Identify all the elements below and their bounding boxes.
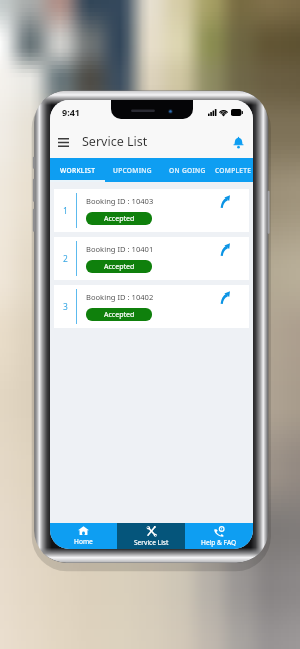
button[interactable]: Service List (117, 523, 185, 549)
staticText: ON GOING (169, 166, 206, 175)
staticText: Booking ID : 10402 (86, 292, 154, 302)
staticText: Home (74, 537, 93, 546)
staticText: Accepted (104, 310, 135, 320)
button[interactable]: Accepted (86, 212, 152, 225)
staticText: Accepted (104, 214, 135, 224)
button[interactable]: Accepted (86, 260, 152, 273)
staticText: 1 (63, 205, 68, 217)
button[interactable]: Home (50, 523, 117, 549)
staticText: Booking ID : 10403 (86, 196, 154, 206)
button[interactable]: Navigate to booking (211, 189, 249, 232)
button[interactable]: Navigate to booking (211, 237, 249, 280)
staticText: 2 (63, 253, 68, 265)
button[interactable]: UPCOMING (105, 158, 160, 182)
staticText: Booking ID : 10401 (86, 244, 154, 254)
staticText: 9:41 (62, 106, 80, 118)
staticText: Service List (82, 133, 148, 150)
staticText: UPCOMING (113, 166, 152, 175)
staticText: Help & FAQ (201, 538, 237, 547)
button[interactable]: 3 (54, 285, 249, 328)
staticText: 3 (63, 301, 68, 313)
button[interactable]: WORKLIST (50, 158, 105, 182)
staticText: COMPLETED (215, 166, 253, 175)
button[interactable]: Help & FAQ (185, 523, 253, 549)
button[interactable]: 1 (54, 189, 249, 232)
button[interactable]: Navigate to booking (211, 285, 249, 328)
button[interactable]: COMPLETED (215, 158, 253, 182)
button[interactable]: 2 (54, 237, 249, 280)
staticText: Accepted (104, 262, 135, 272)
button[interactable]: Open navigation menu (54, 133, 72, 151)
staticText: WORKLIST (60, 166, 96, 175)
button[interactable]: Accepted (86, 308, 152, 321)
button[interactable]: ON GOING (160, 158, 215, 182)
staticText: Service List (134, 538, 169, 547)
button[interactable]: Notifications (228, 132, 248, 152)
